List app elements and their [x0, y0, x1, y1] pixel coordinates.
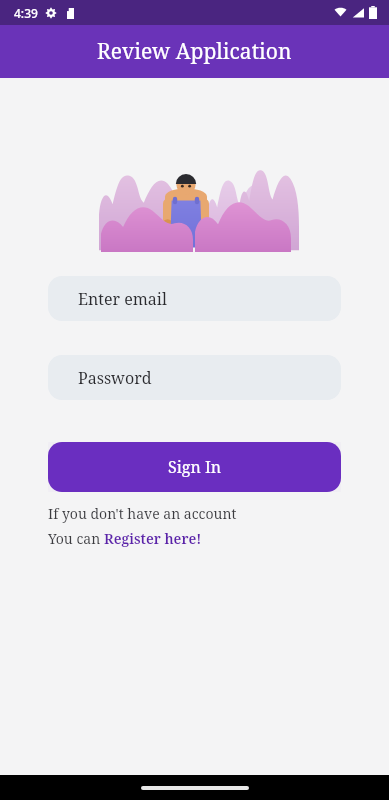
button[interactable]: Enter email: [48, 276, 341, 321]
staticText: If you don't have an account: [48, 504, 237, 523]
staticText: Enter email: [78, 288, 167, 310]
staticText: Register here!: [104, 529, 202, 548]
button[interactable]: Sign In: [48, 442, 341, 492]
button[interactable]: Password: [48, 355, 341, 400]
staticText: 4:39: [14, 5, 38, 21]
staticText: Password: [78, 367, 152, 389]
staticText: You can: [48, 529, 104, 548]
staticText: Review Application: [97, 37, 292, 66]
button[interactable]: Register here!: [104, 529, 202, 548]
staticText: Sign In: [168, 456, 222, 478]
